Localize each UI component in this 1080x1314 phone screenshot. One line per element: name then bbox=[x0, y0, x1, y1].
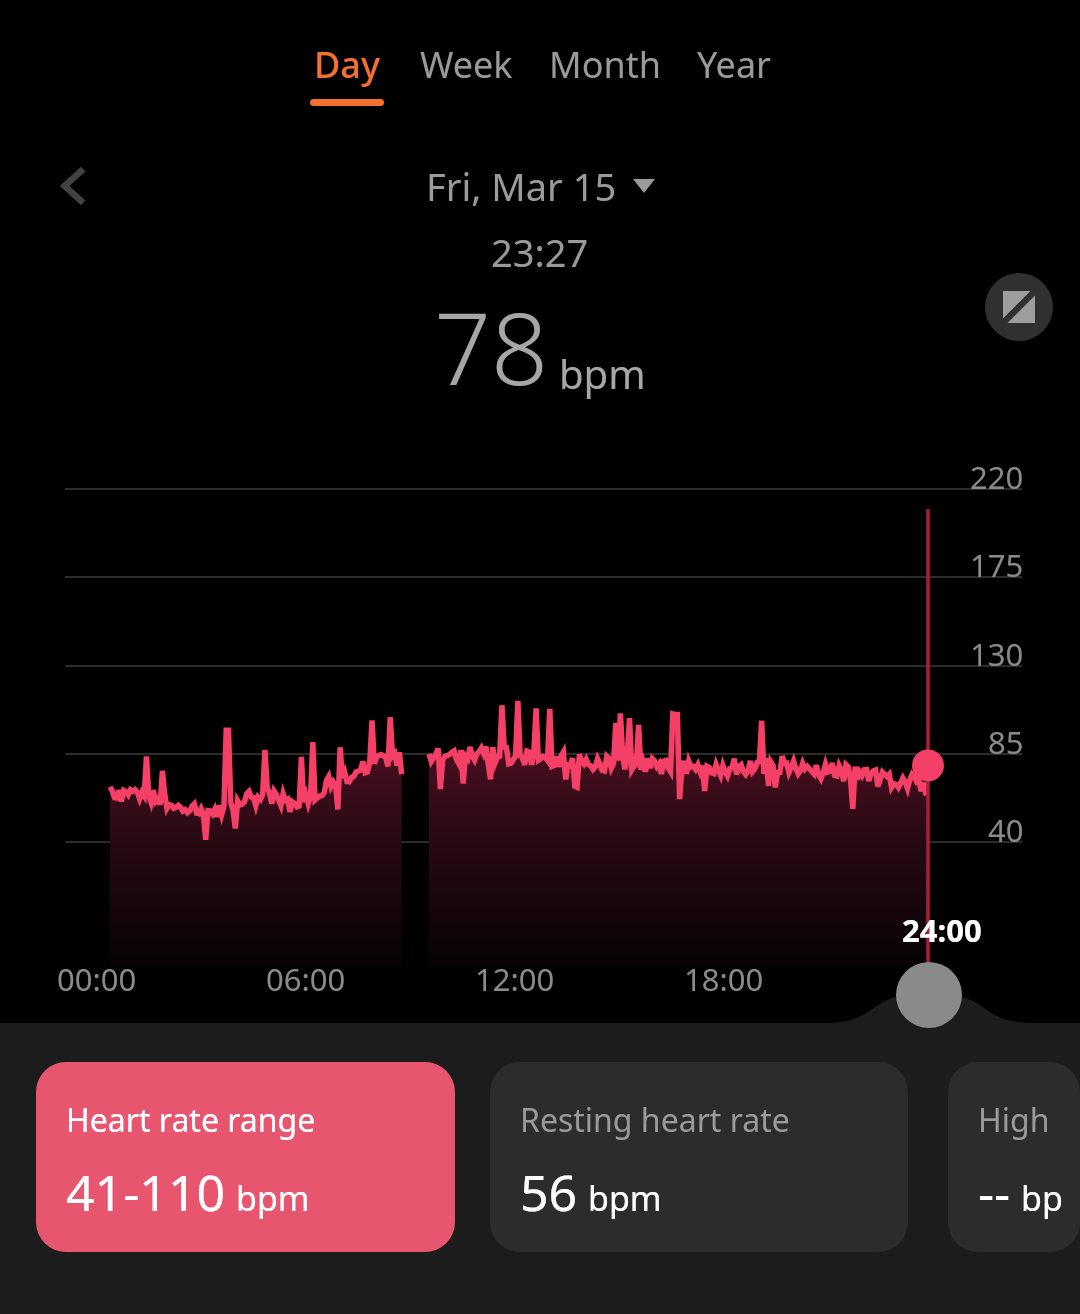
staticText: 24:00 bbox=[902, 909, 982, 951]
staticText: -- bbox=[978, 1158, 1011, 1226]
staticText: Day bbox=[314, 40, 380, 89]
staticText: 56 bbox=[520, 1158, 578, 1226]
button[interactable]: Fri, Mar 15 bbox=[418, 152, 663, 220]
staticText: bpm bbox=[588, 1175, 662, 1221]
staticText: 41-110 bbox=[66, 1158, 226, 1226]
staticText: 00:00 bbox=[57, 958, 137, 1000]
staticText: 12:00 bbox=[475, 958, 555, 1000]
button[interactable]: High heart rate bbox=[948, 1062, 1080, 1252]
button[interactable]: Heart rate range bbox=[36, 1062, 455, 1252]
staticText: Week bbox=[420, 40, 513, 89]
button[interactable]: Week bbox=[402, 0, 531, 106]
staticText: 06:00 bbox=[266, 958, 346, 1000]
button[interactable]: Month bbox=[531, 0, 679, 106]
staticText: 78 bbox=[434, 278, 549, 414]
button[interactable]: Expand chart bbox=[985, 273, 1053, 341]
staticText: bpm bbox=[1021, 1175, 1080, 1221]
staticText: Year bbox=[697, 40, 771, 89]
staticText: 23:27 bbox=[491, 226, 589, 278]
button[interactable]: Day bbox=[292, 0, 402, 106]
staticText: High heart rate bbox=[978, 1098, 1080, 1142]
staticText: 18:00 bbox=[684, 958, 764, 1000]
button[interactable]: Previous day bbox=[46, 156, 106, 216]
staticText: Month bbox=[549, 40, 661, 89]
button[interactable]: Resting heart rate bbox=[490, 1062, 908, 1252]
button[interactable]: Year bbox=[679, 0, 789, 106]
button[interactable]: Resize chart bbox=[896, 962, 962, 1028]
staticText: bpm bbox=[559, 346, 646, 400]
staticText: 130 bbox=[970, 633, 1024, 675]
staticText: Resting heart rate bbox=[520, 1098, 790, 1142]
staticText: bpm bbox=[236, 1175, 310, 1221]
staticText: 85 bbox=[988, 721, 1024, 763]
staticText: 40 bbox=[988, 809, 1024, 851]
staticText: 220 bbox=[970, 456, 1024, 498]
staticText: Fri, Mar 15 bbox=[426, 160, 617, 212]
staticText: 175 bbox=[970, 544, 1024, 586]
staticText: Heart rate range bbox=[66, 1098, 316, 1142]
